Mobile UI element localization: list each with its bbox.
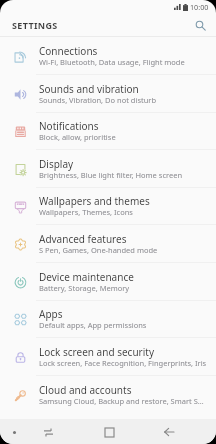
- button[interactable]: Advanced features: [0, 225, 216, 263]
- staticText: S Pen, Games, One-handed mode: [39, 245, 158, 255]
- button[interactable]: Search: [190, 15, 210, 35]
- staticText: Device maintenance: [39, 270, 134, 284]
- staticText: Cloud and accounts: [39, 383, 132, 397]
- staticText: Default apps, App permissions: [39, 320, 147, 330]
- staticText: Sounds and vibration: [39, 82, 139, 96]
- staticText: SETTINGS: [12, 19, 58, 31]
- staticText: Connections: [39, 44, 98, 58]
- staticText: Advanced features: [39, 232, 127, 246]
- button[interactable]: Recent apps: [38, 422, 58, 442]
- button[interactable]: Connections: [0, 37, 216, 75]
- staticText: Display: [39, 157, 74, 171]
- staticText: Notifications: [39, 119, 99, 133]
- staticText: Sounds, Vibration, Do not disturb: [39, 95, 157, 105]
- staticText: Apps: [39, 307, 63, 321]
- button[interactable]: Device maintenance: [0, 263, 216, 301]
- staticText: Wi-Fi, Bluetooth, Data usage, Flight mod…: [39, 57, 185, 67]
- button[interactable]: Apps: [0, 300, 216, 338]
- button[interactable]: Cloud and accounts: [0, 376, 216, 414]
- staticText: Battery, Storage, Memory: [39, 283, 130, 293]
- staticText: Brightness, Blue light filter, Home scre…: [39, 170, 183, 180]
- button[interactable]: Home: [99, 422, 119, 442]
- staticText: Wallpapers and themes: [39, 194, 150, 208]
- staticText: 10:00: [190, 2, 209, 12]
- staticText: Block, allow, prioritise: [39, 132, 116, 142]
- button[interactable]: Sounds and vibration: [0, 75, 216, 113]
- button[interactable]: Notifications: [0, 112, 216, 150]
- staticText: Lock screen, Face Recognition, Fingerpri…: [39, 358, 207, 368]
- button[interactable]: Back: [159, 422, 179, 442]
- button[interactable]: Lock screen and security: [0, 338, 216, 376]
- staticText: Lock screen and security: [39, 345, 154, 359]
- button[interactable]: Display: [0, 150, 216, 188]
- staticText: Wallpapers, Themes, Icons: [39, 207, 133, 217]
- staticText: Samsung Cloud, Backup and restore, Smart…: [39, 396, 207, 406]
- button[interactable]: Wallpapers and themes: [0, 187, 216, 225]
